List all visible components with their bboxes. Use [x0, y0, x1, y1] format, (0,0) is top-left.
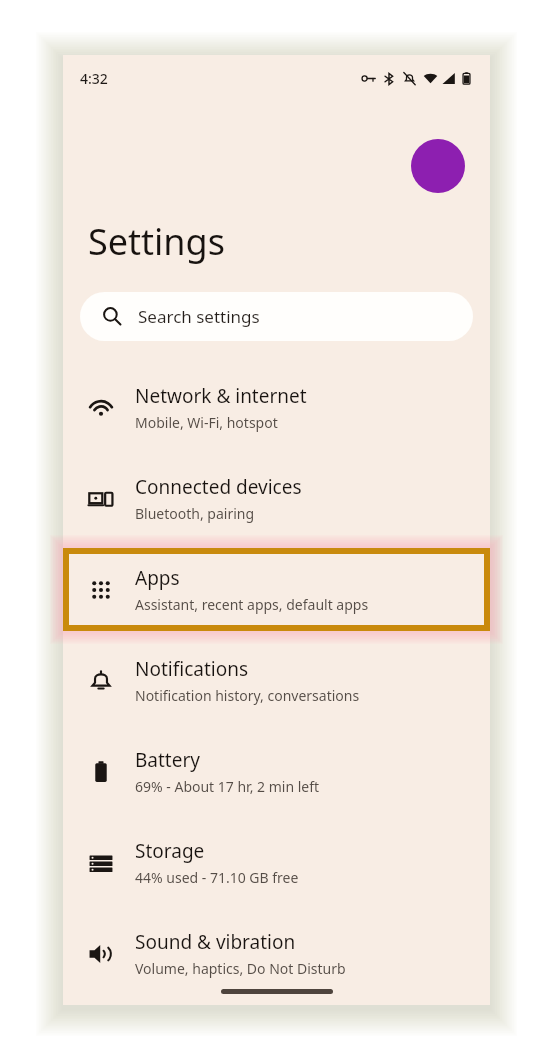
staticText: Connected devices: [135, 474, 302, 500]
staticText: Notification history, conversations: [135, 686, 360, 705]
staticText: 69% - About 17 hr, 2 min left: [135, 777, 320, 796]
staticText: Volume, haptics, Do Not Disturb: [135, 959, 346, 978]
staticText: Notifications: [135, 656, 249, 682]
staticText: Assistant, recent apps, default apps: [135, 595, 369, 614]
staticText: Mobile, Wi-Fi, hotspot: [135, 413, 278, 432]
staticText: Apps: [135, 565, 180, 591]
button[interactable]: Network & internet: [63, 362, 490, 453]
staticText: Bluetooth, pairing: [135, 504, 255, 523]
button[interactable]: Account: [411, 139, 465, 193]
staticText: Battery: [135, 747, 200, 773]
button[interactable]: Apps: [63, 548, 490, 631]
staticText: Settings: [88, 217, 225, 266]
button[interactable]: Search settings: [80, 292, 473, 341]
staticText: Network & internet: [135, 383, 307, 409]
staticText: 44% used - 71.10 GB free: [135, 868, 299, 887]
staticText: Sound & vibration: [135, 929, 296, 955]
button[interactable]: Connected devices: [63, 453, 490, 544]
staticText: Search settings: [138, 305, 260, 328]
button[interactable]: Battery: [63, 726, 490, 817]
staticText: 4:32: [80, 69, 108, 88]
staticText: Storage: [135, 838, 205, 864]
button[interactable]: Sound & vibration: [63, 908, 490, 999]
button[interactable]: Notifications: [63, 635, 490, 726]
button[interactable]: Storage: [63, 817, 490, 908]
